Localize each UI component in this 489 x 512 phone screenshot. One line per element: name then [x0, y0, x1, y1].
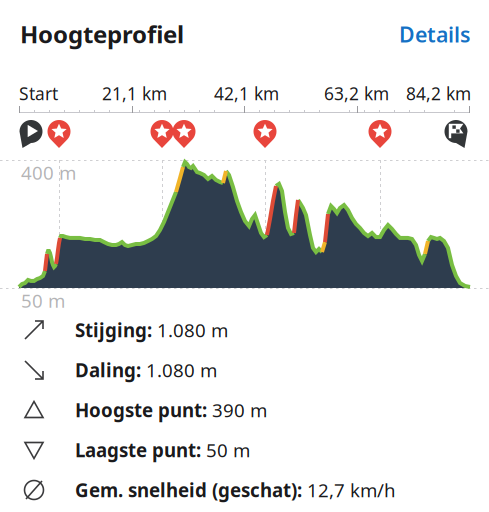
staticText: 50 m [21, 288, 65, 313]
staticText: 12,7 km/h [302, 478, 396, 502]
staticText: 390 m [207, 398, 267, 422]
staticText: Stijging: [75, 318, 152, 342]
staticText: Gem. snelheid (geschat): [75, 478, 302, 502]
staticText: 42,1 km [214, 82, 279, 105]
staticText: 21,1 km [102, 82, 167, 105]
staticText: Laagste punt: [75, 438, 201, 462]
staticText: Daling: [75, 358, 141, 382]
button[interactable]: Details [399, 20, 471, 48]
staticText: Hoogteprofiel [20, 18, 184, 50]
staticText: 50 m [201, 438, 250, 462]
staticText: Start [19, 82, 58, 105]
staticText: Hoogste punt: [75, 398, 207, 422]
staticText: 1.080 m [141, 358, 217, 382]
staticText: 400 m [21, 160, 76, 185]
staticText: 84,2 km [406, 82, 471, 105]
staticText: Details [399, 20, 471, 48]
staticText: 1.080 m [152, 318, 228, 342]
staticText: 63,2 km [324, 82, 389, 105]
